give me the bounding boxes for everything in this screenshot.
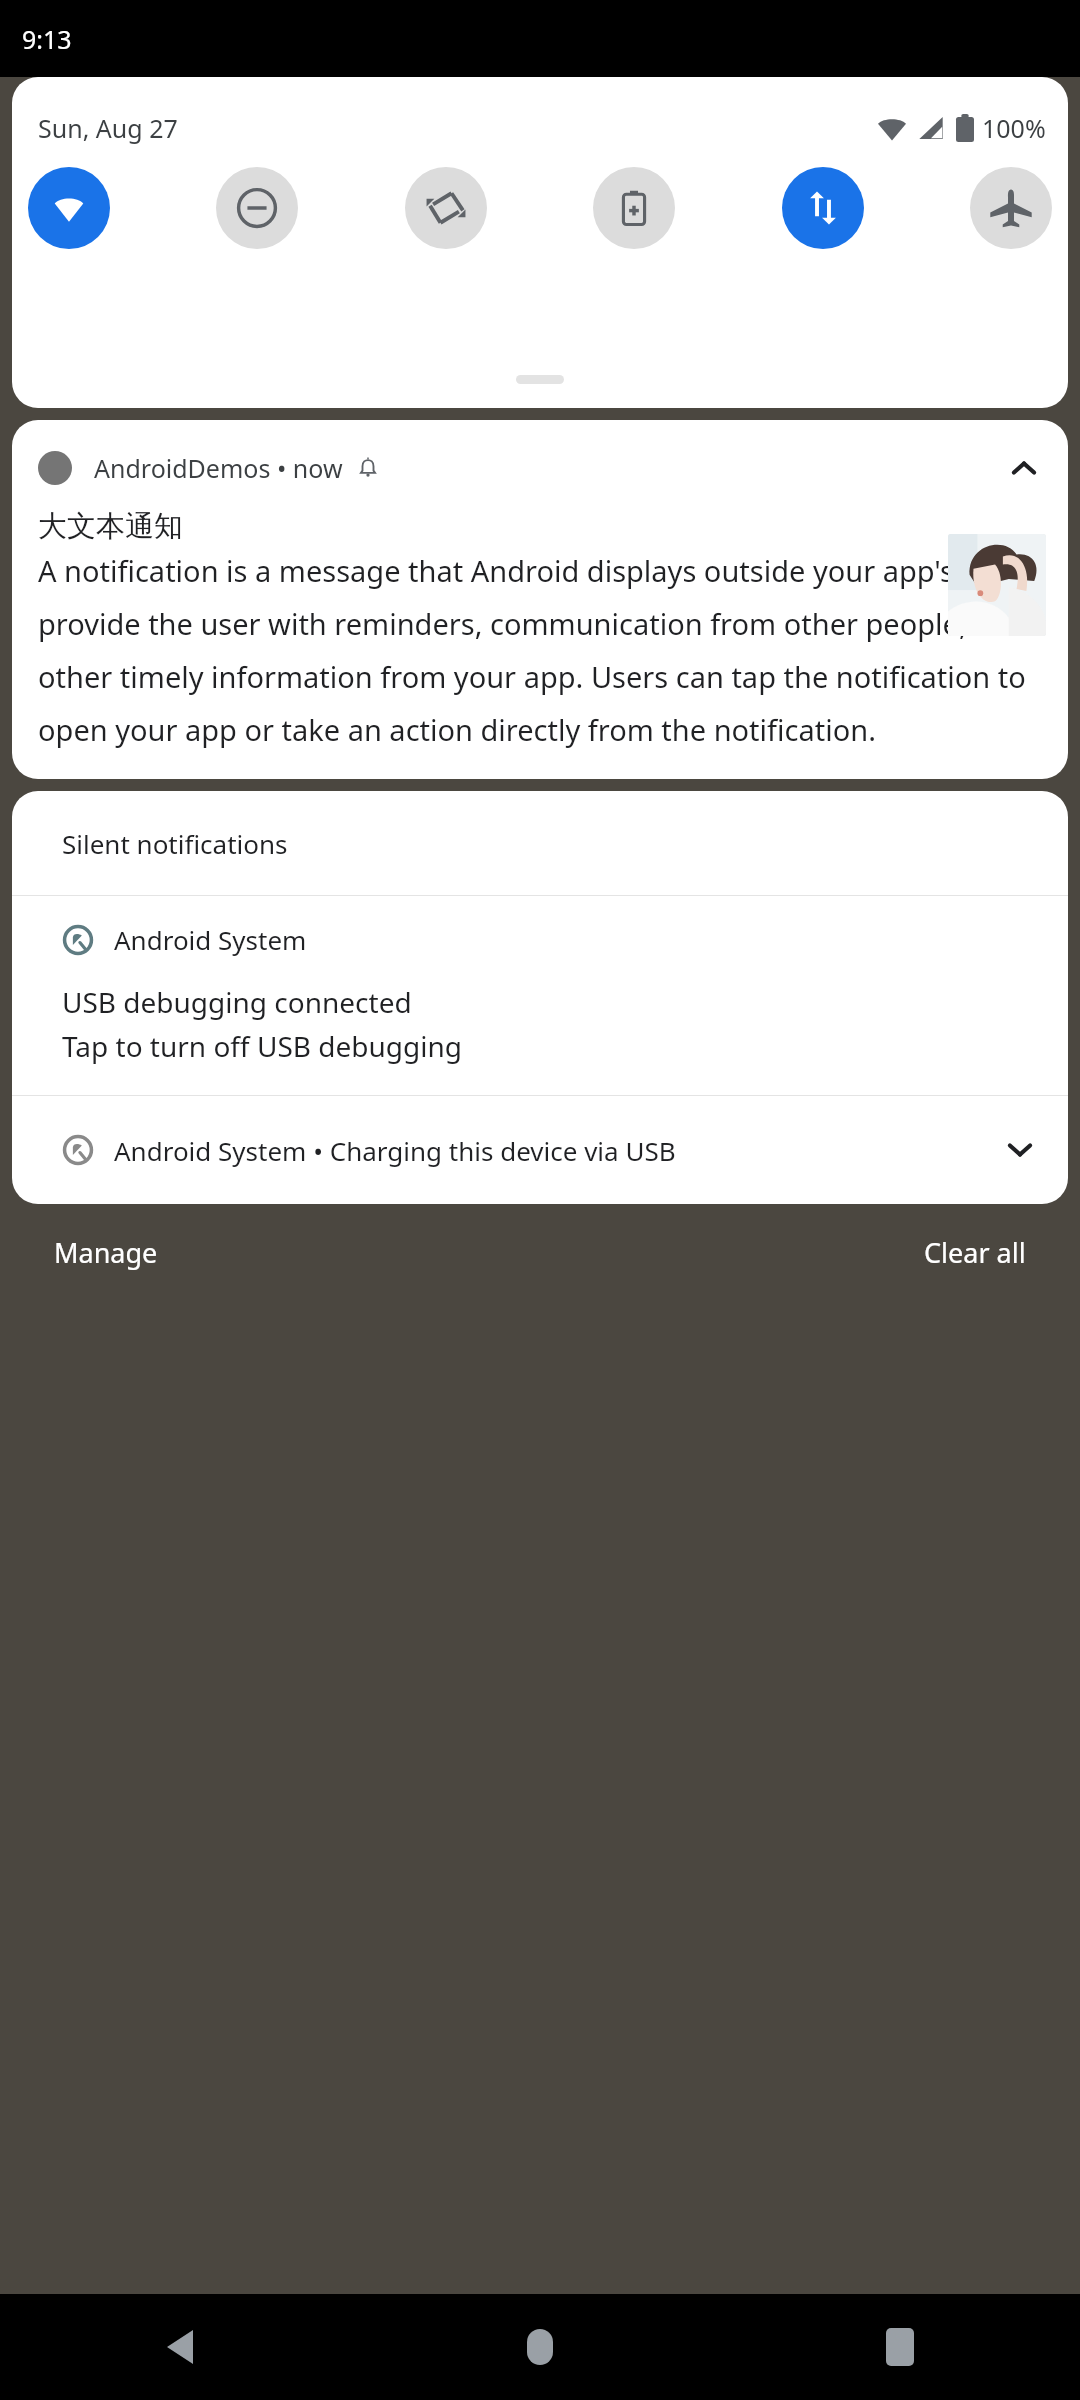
button[interactable]: Do not disturb <box>216 167 298 249</box>
staticText: AndroidDemos • now <box>94 451 343 485</box>
button[interactable]: Auto rotate <box>405 167 487 249</box>
staticText: Sun, Aug 27 <box>38 111 178 145</box>
staticText: Android System <box>114 922 307 957</box>
button[interactable]: Back <box>0 2294 360 2400</box>
button[interactable]: Airplane mode <box>970 167 1052 249</box>
staticText: Manage <box>54 1234 158 1271</box>
button[interactable]: Silent notifications <box>12 791 1068 895</box>
button[interactable]: Collapse <box>1002 446 1046 490</box>
button[interactable]: Android System • Charging this device vi… <box>12 1096 1068 1204</box>
button[interactable]: Android System <box>12 896 1068 1095</box>
button[interactable]: Battery saver <box>593 167 675 249</box>
staticText: A notification is a message that Android… <box>38 551 1046 749</box>
staticText: Clear all <box>924 1234 1026 1271</box>
staticText: Tap to turn off USB debugging <box>62 1027 462 1065</box>
staticText: USB debugging connected <box>62 983 412 1021</box>
button[interactable]: AndroidDemos • now <box>12 420 1068 779</box>
button[interactable]: Home <box>360 2294 720 2400</box>
button[interactable]: Recents <box>720 2294 1080 2400</box>
staticText: 9:13 <box>22 22 72 56</box>
button[interactable]: Manage <box>40 1224 172 1281</box>
staticText: Android System • Charging this device vi… <box>114 1133 676 1168</box>
staticText: Silent notifications <box>62 826 288 861</box>
staticText: 大文本通知 <box>38 508 183 545</box>
button[interactable]: Clear all <box>910 1224 1040 1281</box>
staticText: 100% <box>982 111 1046 145</box>
button[interactable]: Expand <box>998 1128 1042 1172</box>
button[interactable]: Mobile data <box>782 167 864 249</box>
button[interactable]: Wi-Fi <box>28 167 110 249</box>
